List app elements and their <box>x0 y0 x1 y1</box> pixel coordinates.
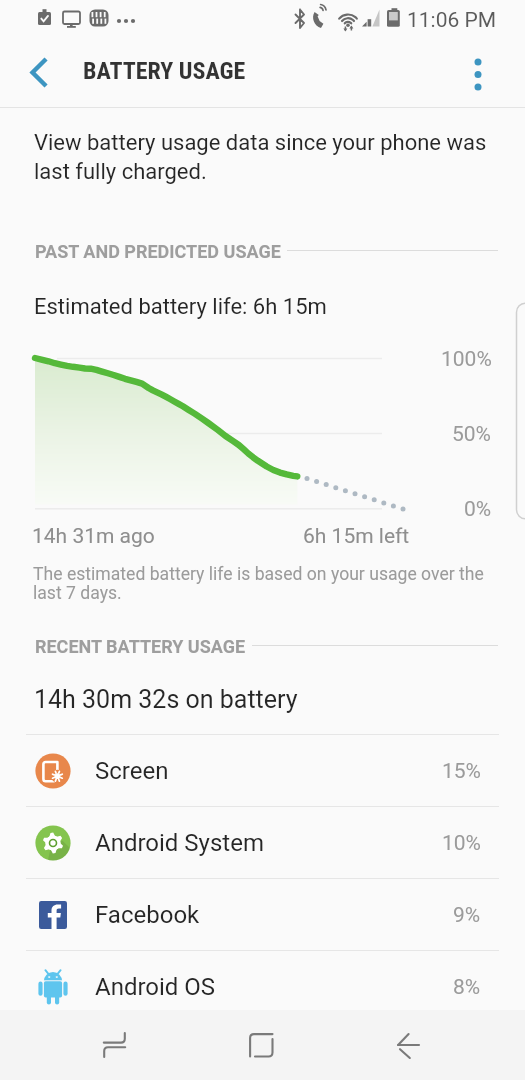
staticText: 10% <box>442 831 481 856</box>
staticText: 15% <box>442 759 481 784</box>
staticText: 0% <box>464 497 492 522</box>
staticText: 11:06 PM <box>407 8 497 33</box>
button[interactable]: Home <box>188 1010 335 1080</box>
staticText: 6h 15m left <box>303 524 410 549</box>
staticText: View battery usage data since your phone… <box>34 130 487 184</box>
staticText: PAST AND PREDICTED USAGE <box>35 241 281 262</box>
staticText: Screen <box>95 757 169 785</box>
staticText: Estimated battery life: 6h 15m <box>34 294 327 320</box>
staticText: 14h 30m 32s on battery <box>34 685 298 714</box>
button[interactable]: Recents <box>41 1010 188 1080</box>
staticText: Android System <box>95 829 264 857</box>
button[interactable]: Facebook <box>0 879 525 951</box>
button[interactable]: Android System <box>0 807 525 879</box>
button[interactable]: Back <box>335 1010 482 1080</box>
staticText: 100% <box>441 347 492 372</box>
staticText: 14h 31m ago <box>32 524 155 549</box>
button[interactable]: More options <box>458 52 498 92</box>
staticText: BATTERY USAGE <box>83 57 246 85</box>
staticText: 8% <box>453 975 481 1000</box>
button[interactable]: Android OS <box>0 951 525 1023</box>
staticText: Android OS <box>95 973 216 1001</box>
staticText: Facebook <box>95 901 200 929</box>
button[interactable]: Back <box>20 52 60 92</box>
staticText: The estimated battery life is based on y… <box>33 564 484 603</box>
staticText: 50% <box>452 422 491 447</box>
staticText: 9% <box>453 903 481 928</box>
button[interactable]: Screen <box>0 735 525 807</box>
staticText: RECENT BATTERY USAGE <box>35 636 246 657</box>
